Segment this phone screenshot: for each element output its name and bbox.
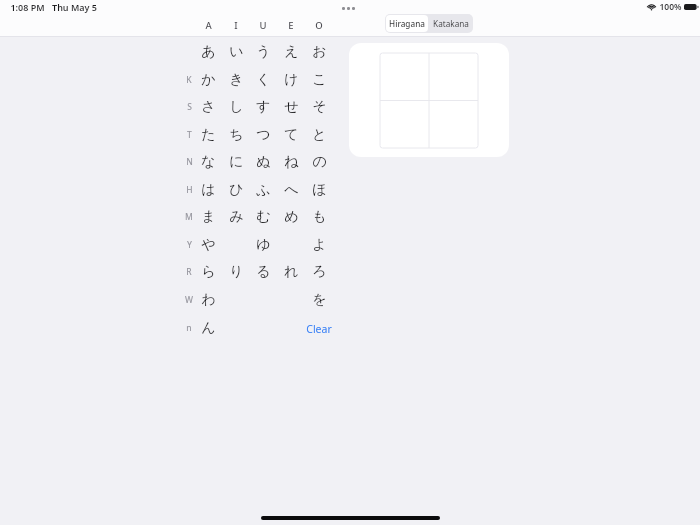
staticText: ろ	[312, 263, 327, 281]
staticText: え	[284, 43, 299, 61]
staticText: I	[234, 19, 238, 32]
staticText: に	[229, 153, 244, 171]
staticText: H	[186, 184, 193, 196]
button[interactable]: め	[278, 206, 304, 228]
staticText: K	[186, 74, 192, 86]
staticText: 100%	[659, 1, 682, 13]
staticText: Hiragana	[389, 18, 425, 29]
button[interactable]: く	[250, 69, 276, 91]
button[interactable]: Hiragana	[386, 15, 428, 32]
staticText: ね	[284, 153, 299, 171]
staticText: ほ	[312, 181, 327, 199]
button[interactable]	[349, 43, 509, 157]
staticText: た	[201, 126, 216, 144]
staticText: ゆ	[256, 236, 271, 254]
button[interactable]: ろ	[306, 261, 332, 283]
button[interactable]: わ	[195, 289, 221, 311]
button[interactable]: ぬ	[250, 151, 276, 173]
staticText: わ	[201, 291, 216, 309]
staticText: う	[256, 43, 271, 61]
staticText: ん	[201, 319, 216, 337]
staticText: O	[315, 19, 323, 32]
staticText: あ	[201, 43, 216, 61]
button[interactable]: き	[223, 69, 249, 91]
staticText: 1:08 PM	[10, 1, 45, 13]
button[interactable]: え	[278, 41, 304, 63]
staticText: T	[187, 129, 192, 141]
button[interactable]: は	[195, 179, 221, 201]
staticText: な	[201, 153, 216, 171]
button[interactable]: そ	[306, 96, 332, 118]
staticText: ま	[201, 208, 216, 226]
button[interactable]: う	[250, 41, 276, 63]
button[interactable]: ん	[195, 317, 221, 339]
staticText: お	[312, 43, 327, 61]
button[interactable]: ほ	[306, 179, 332, 201]
staticText: こ	[312, 71, 327, 89]
button[interactable]: け	[278, 69, 304, 91]
staticText: と	[312, 126, 327, 144]
staticText: れ	[284, 263, 299, 281]
staticText: さ	[201, 98, 216, 116]
button[interactable]: み	[223, 206, 249, 228]
staticText: け	[284, 71, 299, 89]
staticText: や	[201, 236, 216, 254]
button[interactable]: あ	[195, 41, 221, 63]
button[interactable]: つ	[250, 124, 276, 146]
button[interactable]: に	[223, 151, 249, 173]
staticText: せ	[284, 98, 299, 116]
staticText: る	[256, 263, 271, 281]
staticText: む	[256, 208, 271, 226]
button[interactable]: り	[223, 261, 249, 283]
staticText: を	[312, 291, 327, 309]
staticText: の	[312, 153, 327, 171]
staticText: き	[229, 71, 244, 89]
button[interactable]: へ	[278, 179, 304, 201]
staticText: て	[284, 126, 299, 144]
button[interactable]: ゆ	[250, 234, 276, 256]
button[interactable]: ふ	[250, 179, 276, 201]
button[interactable]: か	[195, 69, 221, 91]
button[interactable]: Multitasking options	[342, 4, 358, 12]
button[interactable]: の	[306, 151, 332, 173]
staticText: か	[201, 71, 216, 89]
button[interactable]: を	[306, 289, 332, 311]
staticText: Thu May 5	[52, 1, 97, 13]
button[interactable]: Clear	[297, 320, 341, 338]
button[interactable]: よ	[306, 234, 332, 256]
button[interactable]: Katakana	[429, 14, 473, 33]
staticText: A	[205, 19, 212, 32]
button[interactable]: ひ	[223, 179, 249, 201]
button[interactable]: し	[223, 96, 249, 118]
button[interactable]: す	[250, 96, 276, 118]
button[interactable]: て	[278, 124, 304, 146]
button[interactable]: さ	[195, 96, 221, 118]
staticText: Clear	[306, 322, 332, 336]
staticText: よ	[312, 236, 327, 254]
staticText: M	[185, 211, 193, 223]
button[interactable]: ま	[195, 206, 221, 228]
button[interactable]: ち	[223, 124, 249, 146]
staticText: い	[229, 43, 244, 61]
staticText: W	[185, 294, 193, 306]
staticText: R	[186, 266, 192, 278]
button[interactable]: こ	[306, 69, 332, 91]
button[interactable]: い	[223, 41, 249, 63]
staticText: n	[186, 322, 192, 334]
button[interactable]: せ	[278, 96, 304, 118]
button[interactable]: な	[195, 151, 221, 173]
button[interactable]: お	[306, 41, 332, 63]
staticText: め	[284, 208, 299, 226]
button[interactable]: や	[195, 234, 221, 256]
staticText: S	[187, 101, 192, 113]
button[interactable]: ね	[278, 151, 304, 173]
button[interactable]: ら	[195, 261, 221, 283]
button[interactable]: も	[306, 206, 332, 228]
button[interactable]: と	[306, 124, 332, 146]
button[interactable]: る	[250, 261, 276, 283]
staticText: へ	[284, 181, 299, 199]
staticText: ち	[229, 126, 244, 144]
button[interactable]: れ	[278, 261, 304, 283]
button[interactable]: む	[250, 206, 276, 228]
button[interactable]: た	[195, 124, 221, 146]
